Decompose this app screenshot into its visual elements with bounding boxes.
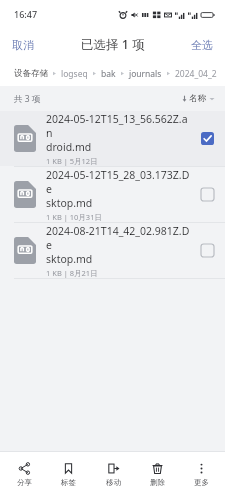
staticText: 取消: [12, 38, 34, 52]
staticText: 更多: [194, 478, 209, 487]
button[interactable]: logseq: [61, 68, 88, 80]
staticText: 标签: [61, 478, 76, 487]
staticText: 1 KB | 10月31日: [46, 212, 102, 222]
staticText: 全选: [191, 38, 213, 52]
button[interactable]: 移动: [93, 459, 133, 490]
staticText: droid.md: [46, 140, 92, 154]
staticText: logseq: [61, 68, 88, 80]
button[interactable]: 标签: [48, 459, 88, 490]
button[interactable]: 2024-05-12T15_13_56.562Z.an: [0, 111, 225, 166]
staticText: 2024_04_2: [175, 68, 217, 80]
staticText: 名称: [189, 93, 206, 104]
button[interactable]: 2024_04_2: [175, 68, 217, 80]
button[interactable]: Selected: [200, 131, 215, 146]
button[interactable]: 2024-08-21T14_42_02.981Z.De: [0, 223, 225, 278]
button[interactable]: bak: [101, 68, 116, 80]
staticText: 共 3 项: [14, 93, 41, 105]
staticText: 1 KB | 5月12日: [46, 156, 98, 166]
staticText: 设备存储: [14, 68, 48, 79]
button[interactable]: 2024-05-12T15_28_03.173Z.De: [0, 167, 225, 222]
button[interactable]: 全选: [179, 32, 225, 58]
staticText: 分享: [17, 478, 32, 487]
staticText: journals: [129, 68, 162, 80]
staticText: 删除: [150, 478, 165, 487]
staticText: 1 KB | 8月21日: [46, 268, 98, 278]
button[interactable]: 取消: [0, 32, 46, 58]
staticText: 移动: [106, 478, 121, 487]
staticText: 16:47: [14, 8, 38, 20]
staticText: sktop.md: [46, 252, 93, 266]
staticText: sktop.md: [46, 196, 93, 210]
button[interactable]: Select: [200, 187, 215, 202]
staticText: bak: [101, 68, 116, 80]
staticText: 2024-05-12T15_13_56.562Z.an: [46, 112, 194, 140]
staticText: 2024-05-12T15_28_03.173Z.De: [46, 168, 194, 196]
button[interactable]: Select: [200, 243, 215, 258]
button[interactable]: 设备存储: [14, 68, 48, 79]
button[interactable]: 删除: [137, 459, 177, 490]
button[interactable]: 名称: [182, 93, 225, 104]
button[interactable]: journals: [129, 68, 162, 80]
staticText: 已选择 1 项: [81, 36, 145, 53]
button[interactable]: 更多: [181, 459, 221, 490]
button[interactable]: 分享: [4, 459, 44, 490]
staticText: 2024-08-21T14_42_02.981Z.De: [46, 224, 194, 252]
